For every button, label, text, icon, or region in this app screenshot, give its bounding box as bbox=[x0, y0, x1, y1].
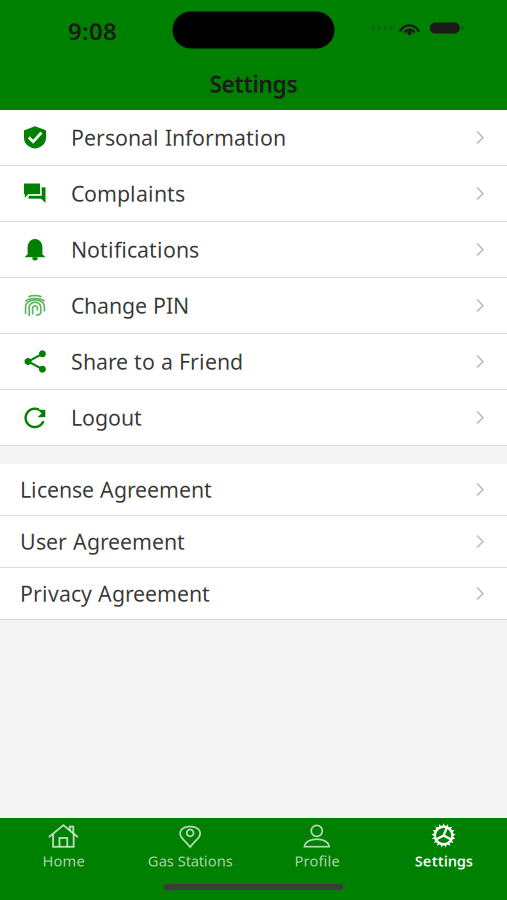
button[interactable]: License Agreement bbox=[0, 464, 507, 516]
button[interactable]: Home bbox=[0, 824, 127, 870]
staticText: Home bbox=[42, 851, 84, 870]
button[interactable]: Personal Information bbox=[0, 110, 507, 166]
button[interactable]: User Agreement bbox=[0, 516, 507, 568]
button[interactable]: Settings bbox=[380, 824, 507, 870]
button[interactable]: Complaints bbox=[0, 166, 507, 222]
staticText: Personal Information bbox=[71, 123, 286, 152]
staticText: License Agreement bbox=[20, 475, 212, 504]
staticText: Profile bbox=[294, 851, 339, 870]
staticText: Privacy Agreement bbox=[20, 579, 210, 608]
button[interactable]: Privacy Agreement bbox=[0, 568, 507, 620]
staticText: Notifications bbox=[71, 235, 199, 264]
staticText: 9:08 bbox=[68, 15, 117, 47]
staticText: Settings bbox=[415, 851, 473, 870]
button[interactable]: Notifications bbox=[0, 222, 507, 278]
staticText: User Agreement bbox=[20, 527, 185, 556]
staticText: Gas Stations bbox=[148, 851, 233, 870]
button[interactable]: Change PIN bbox=[0, 278, 507, 334]
staticText: Change PIN bbox=[71, 291, 189, 320]
button[interactable]: Profile bbox=[253, 824, 380, 870]
button[interactable]: Gas Stations bbox=[127, 824, 254, 870]
staticText: Settings bbox=[209, 69, 297, 99]
button[interactable]: Logout bbox=[0, 390, 507, 446]
staticText: Logout bbox=[71, 403, 142, 432]
staticText: Share to a Friend bbox=[71, 347, 243, 376]
staticText: Complaints bbox=[71, 179, 185, 208]
button[interactable]: Share to a Friend bbox=[0, 334, 507, 390]
